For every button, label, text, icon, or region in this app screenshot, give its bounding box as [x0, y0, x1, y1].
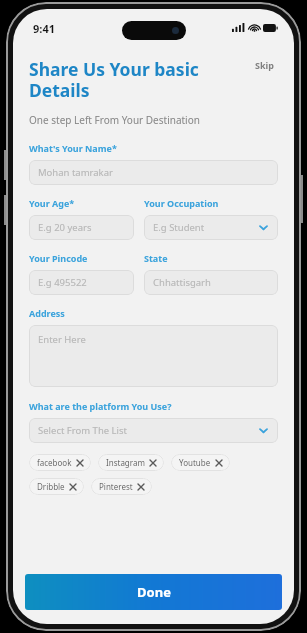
button[interactable]: Skip: [251, 57, 278, 73]
staticText: Enter Here: [38, 333, 86, 346]
staticText: Select From The List: [38, 424, 127, 437]
button[interactable]: Youtube: [171, 454, 230, 471]
button[interactable]: Chhattisgarh: [144, 270, 278, 295]
staticText: What are the platform You Use?: [29, 400, 172, 412]
button[interactable]: E.g Student: [144, 215, 278, 240]
staticText: Skip: [255, 59, 274, 71]
staticText: Share Us Your basic Details: [29, 57, 214, 102]
staticText: 9:41: [33, 21, 55, 36]
staticText: Instagram: [106, 457, 145, 468]
button[interactable]: E.g 20 years: [29, 215, 134, 240]
staticText: facebook: [37, 457, 72, 468]
button[interactable]: E.g 495522: [29, 270, 134, 295]
staticText: E.g 495522: [38, 276, 87, 289]
staticText: State: [144, 252, 168, 264]
staticText: Address: [29, 307, 65, 319]
staticText: E.g Student: [153, 221, 205, 234]
button[interactable]: Dribble: [29, 478, 84, 495]
button[interactable]: Mohan tamrakar: [29, 160, 278, 185]
button[interactable]: Done: [25, 574, 282, 610]
staticText: Pinterest: [99, 481, 133, 492]
staticText: One step Left From Your Destination: [29, 113, 200, 127]
staticText: E.g 20 years: [38, 221, 92, 234]
staticText: Chhattisgarh: [153, 276, 211, 289]
staticText: Your Occupation: [144, 197, 219, 209]
button[interactable]: Instagram: [98, 454, 164, 471]
staticText: Your Pincode: [29, 252, 88, 264]
staticText: Dribble: [37, 481, 65, 492]
staticText: Mohan tamrakar: [38, 166, 113, 179]
staticText: Done: [137, 583, 171, 601]
button[interactable]: Pinterest: [91, 478, 152, 495]
button[interactable]: Enter Here: [29, 325, 278, 387]
button[interactable]: Select From The List: [29, 418, 278, 443]
button[interactable]: facebook: [29, 454, 91, 471]
staticText: Youtube: [179, 457, 211, 468]
staticText: Your Age*: [29, 197, 75, 209]
staticText: What's Your Name*: [29, 142, 117, 154]
